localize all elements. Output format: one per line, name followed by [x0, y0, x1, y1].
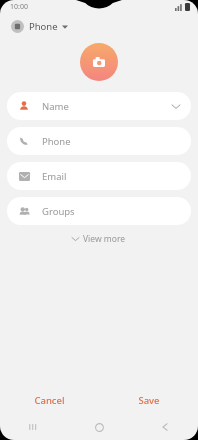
- button[interactable]: Back: [132, 414, 198, 440]
- staticText: 10:00: [10, 2, 28, 12]
- staticText: Groups: [42, 205, 180, 218]
- button[interactable]: View more: [0, 233, 198, 245]
- staticText: Email: [42, 170, 180, 183]
- button[interactable]: Name: [7, 92, 191, 120]
- button[interactable]: Save: [99, 386, 198, 414]
- staticText: Save: [138, 394, 160, 407]
- button[interactable]: Phone: [8, 17, 71, 36]
- button[interactable]: Phone: [7, 127, 191, 155]
- button[interactable]: Cancel: [0, 386, 99, 414]
- staticText: View more: [83, 233, 126, 245]
- staticText: Name: [42, 100, 172, 113]
- button[interactable]: Recent apps: [0, 414, 66, 440]
- staticText: Phone: [29, 20, 58, 33]
- button[interactable]: Add contact photo: [80, 43, 118, 81]
- staticText: Cancel: [34, 394, 65, 407]
- button[interactable]: Email: [7, 162, 191, 190]
- button[interactable]: Groups: [7, 197, 191, 225]
- staticText: Phone: [42, 135, 180, 148]
- button[interactable]: Home: [66, 414, 132, 440]
